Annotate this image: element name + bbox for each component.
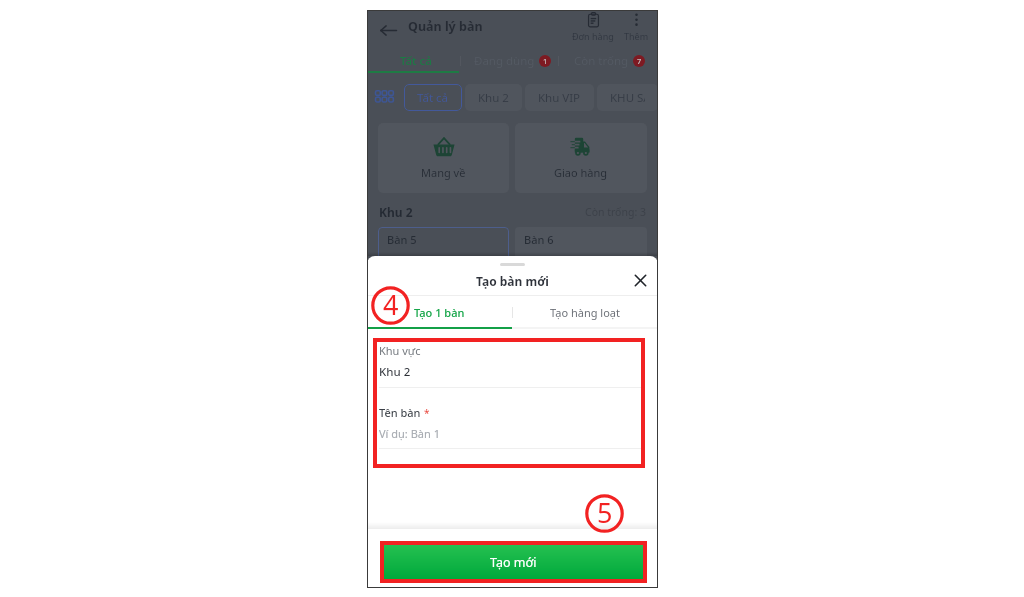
button[interactable]: Tạo hàng loạt [512, 296, 658, 329]
button[interactable]: Tất cả [367, 48, 464, 73]
staticText: Tất cả [417, 90, 449, 106]
staticText: Khu vực [379, 343, 421, 358]
staticText: Khu 2 [379, 204, 413, 220]
staticText: Khu 2 [478, 90, 509, 106]
button[interactable]: Bàn 5 [378, 227, 509, 267]
button[interactable]: Đơn hàng [570, 12, 616, 42]
button[interactable]: Close [630, 270, 650, 290]
button[interactable]: Grid layout [374, 87, 394, 107]
button[interactable]: Mang về [378, 123, 509, 193]
staticText: Tên bàn [379, 405, 421, 420]
button[interactable]: Tạo 1 bàn [367, 296, 512, 329]
button[interactable]: Tất cả [404, 84, 462, 111]
button[interactable]: Đang dùng [464, 48, 561, 73]
staticText: Còn trống: 3 [585, 205, 646, 219]
staticText: Thêm [624, 30, 649, 42]
staticText: Bàn 5 [387, 232, 417, 247]
staticText: Khu VIP [538, 90, 581, 106]
button[interactable]: Còn trống [561, 48, 658, 73]
staticText: KHU SẢ [610, 90, 645, 106]
staticText: Mang về [421, 165, 466, 180]
staticText: Giao hàng [554, 165, 608, 180]
staticText: Ví dụ: Bàn 1 [379, 426, 440, 441]
button[interactable]: Khu 2 [465, 84, 522, 111]
staticText: Tạo hàng loạt [550, 305, 620, 320]
button[interactable]: Back [377, 19, 399, 41]
staticText: 7 [637, 56, 642, 66]
staticText: Đang dùng [474, 53, 535, 69]
button[interactable]: KHU SẢ [597, 84, 658, 111]
staticText: Quản lý bàn [408, 18, 483, 35]
staticText: Tất cả [400, 53, 432, 69]
staticText: Bàn 6 [524, 232, 554, 247]
button[interactable]: Thêm [618, 12, 654, 42]
button[interactable]: Khu VIP [525, 84, 594, 111]
staticText: Khu 2 [379, 364, 411, 380]
staticText: Tạo 1 bàn [414, 305, 465, 320]
staticText: 4 [383, 286, 399, 323]
staticText: 1 [543, 56, 548, 66]
button[interactable]: Bàn 6 [515, 227, 647, 267]
button[interactable]: Tạo mới [384, 545, 643, 579]
staticText: 5 [597, 494, 613, 531]
button[interactable]: Giao hàng [515, 123, 647, 193]
staticText: Đơn hàng [572, 30, 614, 42]
staticText: Tạo mới [490, 554, 537, 571]
staticText: Tạo bàn mới [476, 273, 549, 289]
staticText: * [424, 406, 430, 420]
